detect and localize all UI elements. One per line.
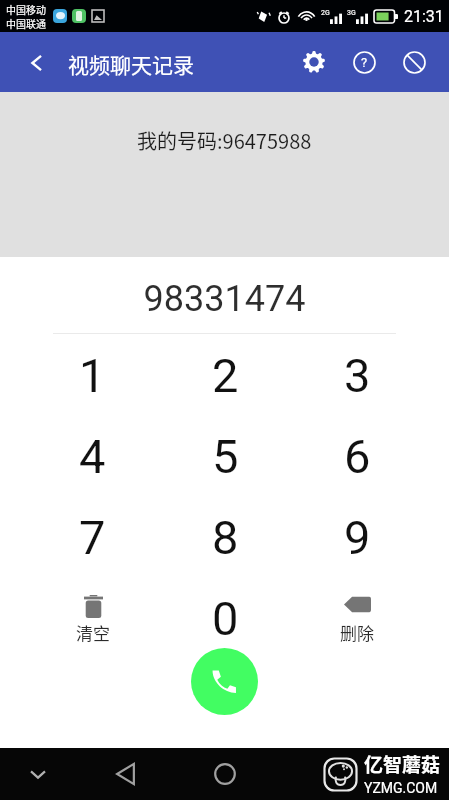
staticText: 清空 [76, 620, 110, 645]
button[interactable]: 8 [159, 497, 291, 578]
staticText: ? [361, 55, 368, 70]
button[interactable]: 9 [291, 497, 423, 578]
staticText: 中国联通 [6, 16, 46, 30]
staticText: 我的号码:96475988 [137, 126, 312, 155]
button[interactable]: Back [0, 32, 56, 92]
button[interactable]: 7 [26, 497, 159, 578]
staticText: 4 [79, 429, 106, 484]
button[interactable]: 1 [26, 335, 159, 416]
staticText: YZMG.COM [364, 780, 438, 796]
staticText: 98331474 [0, 278, 449, 320]
staticText: 中国移动 [6, 2, 46, 16]
button[interactable]: Back [76, 748, 175, 800]
button[interactable]: Hide keyboard [0, 748, 76, 800]
staticText: 3 [344, 348, 371, 403]
staticText: 2G [321, 9, 330, 17]
button[interactable]: 3 [291, 335, 423, 416]
button[interactable]: Home [175, 748, 274, 800]
button[interactable]: 清空 [26, 578, 159, 659]
staticText: 删除 [340, 620, 374, 645]
button[interactable]: Call [191, 648, 258, 715]
button[interactable]: 2 [159, 335, 291, 416]
button[interactable]: 0 [159, 578, 291, 659]
staticText: 21:31 [404, 7, 444, 26]
staticText: 亿智蘑菇 [364, 750, 441, 778]
button[interactable]: 4 [26, 416, 159, 497]
staticText: 0 [212, 591, 239, 646]
button[interactable]: 删除 [291, 578, 423, 659]
staticText: 8 [212, 510, 239, 565]
button[interactable]: 6 [291, 416, 423, 497]
staticText: 1 [79, 348, 106, 403]
staticText: 7 [79, 510, 106, 565]
staticText: 6 [344, 429, 371, 484]
staticText: 视频聊天记录 [68, 49, 194, 79]
button[interactable]: Block [390, 38, 438, 86]
button[interactable]: Settings [294, 38, 342, 86]
staticText: 2 [212, 348, 239, 403]
button[interactable]: Help [342, 38, 390, 86]
staticText: 5 [212, 429, 239, 484]
button[interactable]: 5 [159, 416, 291, 497]
staticText: 9 [344, 510, 371, 565]
staticText: 3G [347, 9, 356, 17]
